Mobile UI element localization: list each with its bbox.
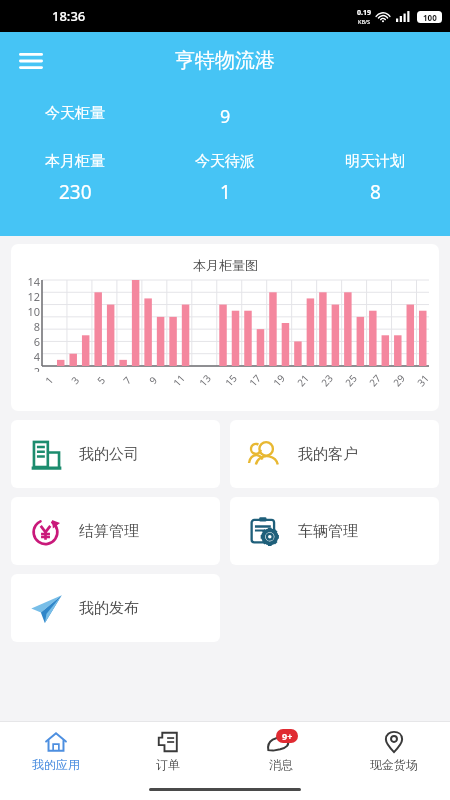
staticText: 14 (27, 274, 40, 289)
button[interactable]: 我的应用 (0, 722, 112, 778)
staticText: 29 (390, 371, 408, 389)
staticText: 2 (33, 364, 40, 372)
staticText: 8 (33, 319, 40, 334)
staticText: 消息 (269, 757, 293, 772)
staticText: 1 (220, 179, 231, 205)
staticText: 5 (94, 373, 108, 387)
staticText: 10 (27, 304, 40, 319)
staticText: 我的发布 (79, 599, 139, 618)
staticText: 0.19 (357, 8, 371, 18)
staticText: 18:36 (52, 7, 86, 25)
button[interactable]: 订单 (112, 722, 224, 778)
staticText: KB/S (358, 18, 371, 25)
staticText: 7 (120, 373, 134, 387)
staticText: 25 (342, 371, 360, 389)
staticText: 9 (220, 104, 231, 129)
staticText: 31 (414, 371, 432, 389)
staticText: 13 (196, 371, 214, 389)
button[interactable]: 结算管理 (11, 497, 220, 565)
staticText: 1 (42, 373, 56, 387)
button[interactable]: 明天计划 (300, 152, 450, 205)
staticText: 9 (146, 373, 160, 387)
staticText: 9+ (282, 730, 293, 742)
staticText: 21 (294, 371, 312, 389)
staticText: 4 (33, 349, 40, 364)
staticText: 11 (170, 371, 188, 389)
staticText: 明天计划 (345, 152, 405, 171)
staticText: 230 (59, 179, 92, 205)
staticText: 我的客户 (298, 445, 358, 464)
button[interactable]: 今天待派 (150, 152, 300, 205)
button[interactable]: 我的公司 (11, 420, 220, 488)
staticText: 现金货场 (370, 757, 418, 772)
staticText: 本月柜量图 (193, 257, 258, 273)
staticText: 15 (222, 371, 240, 389)
button[interactable]: 9+ (224, 722, 337, 778)
button[interactable]: 本月柜量 (0, 152, 150, 205)
staticText: 23 (318, 371, 336, 389)
button[interactable]: 我的发布 (11, 574, 220, 642)
staticText: 我的应用 (32, 757, 80, 772)
staticText: 我的公司 (79, 445, 139, 464)
staticText: 6 (33, 334, 40, 349)
button[interactable]: 车辆管理 (230, 497, 439, 565)
staticText: 8 (370, 179, 381, 205)
staticText: 亨特物流港 (175, 48, 275, 73)
staticText: 27 (366, 371, 384, 389)
staticText: 车辆管理 (298, 522, 358, 541)
button[interactable]: 现金货场 (337, 722, 450, 778)
button[interactable]: Menu (8, 38, 54, 84)
staticText: 订单 (156, 757, 180, 772)
button[interactable]: 今天柜量 (0, 104, 450, 129)
staticText: 今天柜量 (45, 104, 105, 123)
staticText: 12 (27, 289, 40, 304)
staticText: 结算管理 (79, 522, 139, 541)
staticText: 3 (68, 373, 82, 387)
staticText: 17 (246, 371, 264, 389)
staticText: 今天待派 (195, 152, 255, 171)
staticText: 19 (270, 371, 288, 389)
staticText: 本月柜量 (45, 152, 105, 171)
staticText: 100 (423, 12, 437, 23)
button[interactable]: 我的客户 (230, 420, 439, 488)
